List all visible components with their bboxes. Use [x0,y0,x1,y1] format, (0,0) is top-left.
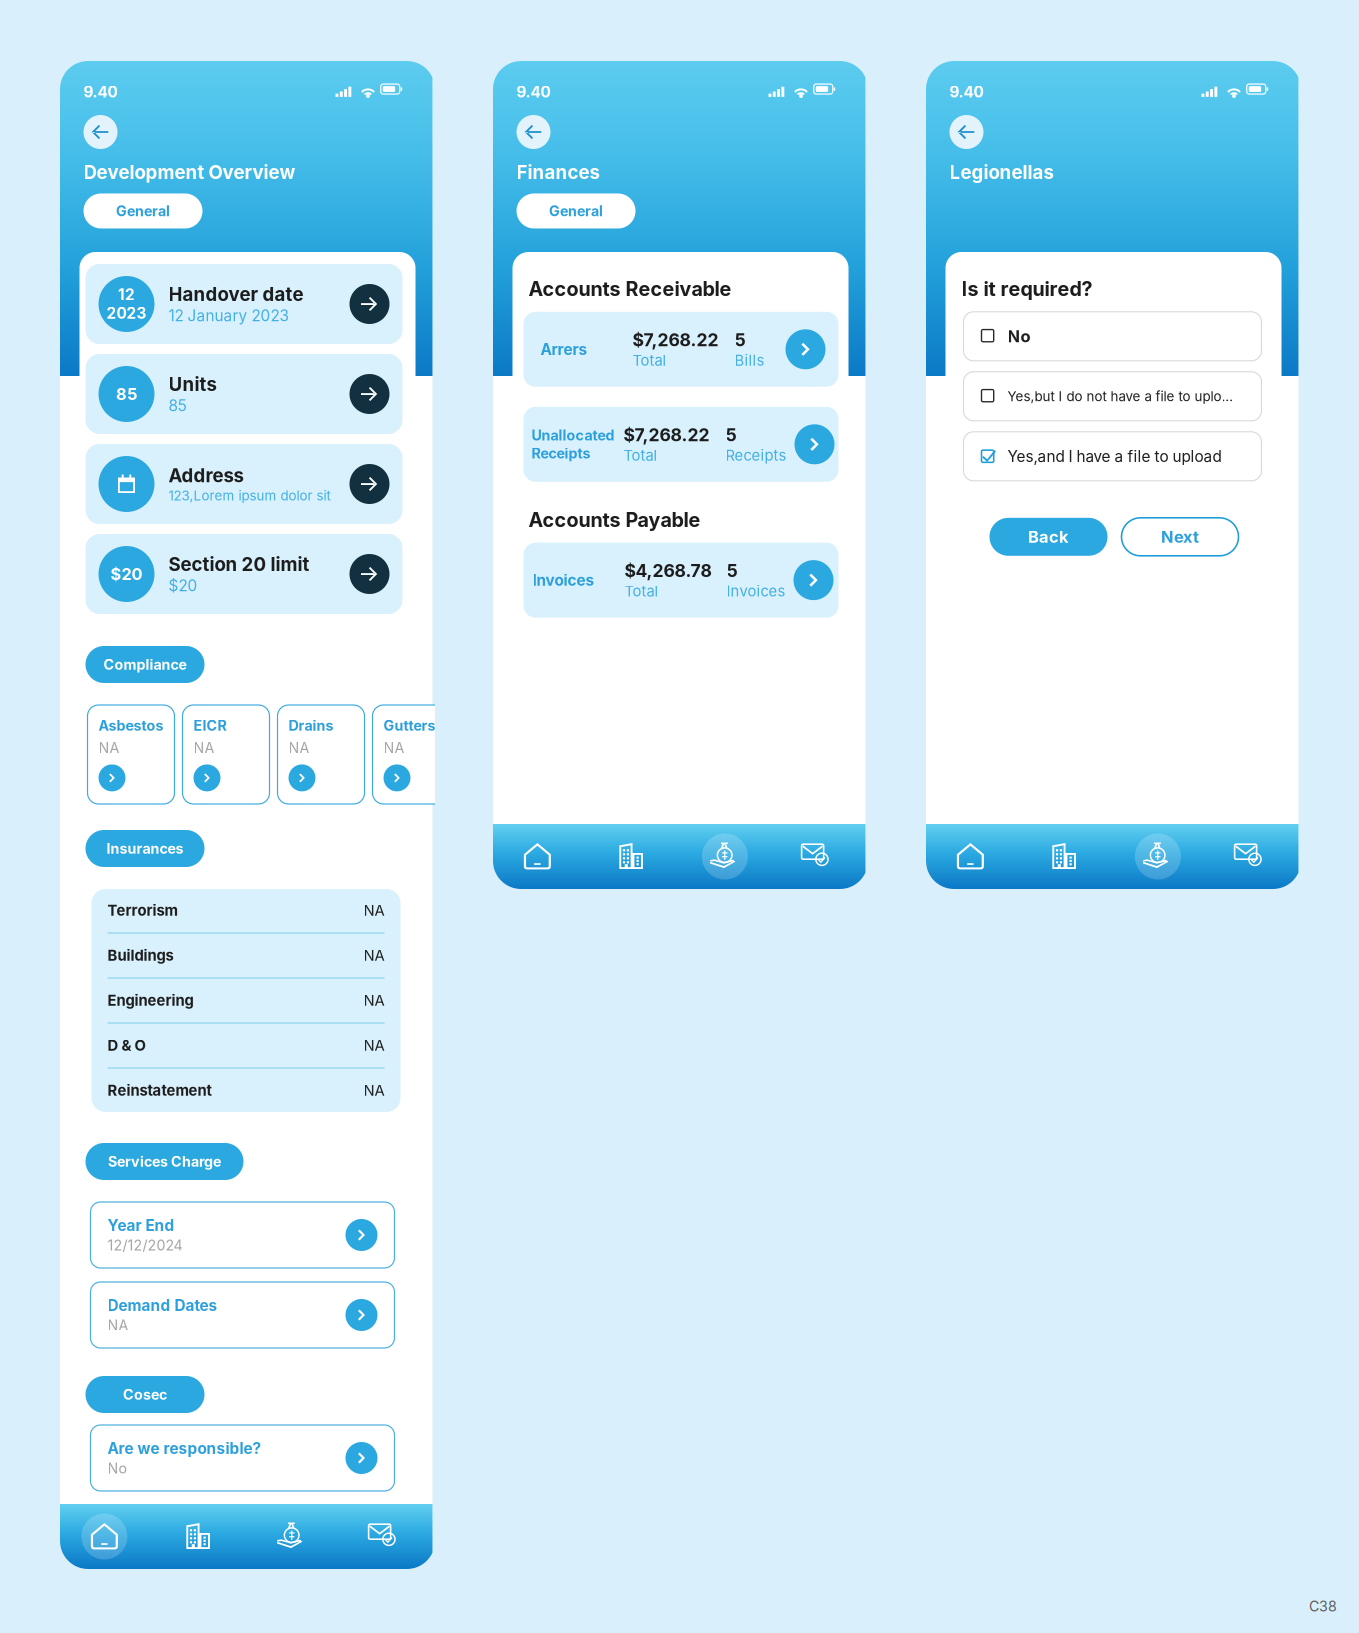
button[interactable]: Year End [90,1202,394,1268]
button[interactable]: Home [490,824,584,889]
staticText: NA [363,992,384,1009]
button[interactable]: Home [57,1504,151,1569]
staticText: EICR [193,717,226,734]
button[interactable]: Unallocated [523,407,838,482]
button[interactable]: Address [85,444,402,524]
staticText: Gutters [383,717,435,734]
staticText: General [116,202,170,220]
staticText: General [549,202,603,220]
staticText: Receipts [725,446,786,464]
staticText: Insurances [106,840,183,857]
staticText: $20 [110,564,142,584]
staticText: NA [288,739,309,756]
button[interactable]: Are we responsible? [90,1425,394,1491]
staticText: Receipts [531,445,590,462]
staticText: 2023 [106,304,146,322]
staticText: Asbestos [98,717,163,734]
staticText: Unallocated [531,427,614,444]
button[interactable]: EICR [182,705,269,804]
staticText: Invoices [726,582,785,600]
staticText: 85 [116,384,137,404]
staticText: Yes,but I do not have a file to upload [1007,388,1233,404]
staticText: 5 [734,329,745,350]
button[interactable]: Yes,and I have a file to upload [963,432,1261,481]
button[interactable]: Invoices [523,543,838,618]
button[interactable]: Cosec [85,1376,204,1413]
staticText: Units [168,373,216,395]
staticText: 5 [725,424,736,445]
staticText: $7,268.22 [623,424,709,445]
staticText: Finances [516,161,599,183]
staticText: No [1007,326,1030,346]
staticText: NA [363,1037,384,1054]
staticText: Engineering [107,992,193,1009]
button[interactable]: Back [516,115,550,149]
staticText: Invoices [532,571,594,589]
button[interactable]: Finances [1111,824,1205,889]
staticText: 9.40 [83,83,117,101]
button[interactable]: General [83,193,202,228]
staticText: $4,268.78 [624,560,711,581]
staticText: NA [363,902,384,919]
staticText: Total [632,351,666,369]
staticText: 5 [726,560,737,581]
button[interactable]: Yes,but I do not have a file to upload [963,372,1261,421]
staticText: Cosec [123,1386,167,1403]
staticText: NA [98,739,119,756]
staticText: Terrorism [107,902,177,919]
button[interactable]: Messages [339,1504,433,1569]
button[interactable]: 12 [85,264,402,344]
staticText: 9.40 [516,83,550,101]
button[interactable]: Back [949,115,983,149]
staticText: Is it required? [961,277,1092,301]
button[interactable]: Insurances [85,830,204,867]
button[interactable]: Buildings [584,824,678,889]
staticText: NA [383,739,404,756]
staticText: Year End [107,1216,174,1235]
staticText: 12 January 2023 [168,306,288,325]
button[interactable]: Buildings [151,1504,245,1569]
staticText: No [107,1460,127,1477]
staticText: NA [363,1082,384,1099]
button[interactable]: Buildings [1017,824,1111,889]
button[interactable]: Messages [1205,824,1299,889]
staticText: Accounts Payable [528,508,700,532]
button[interactable]: Fire [467,705,554,804]
button[interactable]: Asbestos [87,705,174,804]
staticText: 12 [118,285,135,304]
button[interactable]: Back [989,518,1107,556]
staticText: 123,Lorem ipsum dolor sit [168,488,330,504]
button[interactable]: Next [1121,518,1238,556]
button[interactable]: Back [83,115,117,149]
button[interactable]: Drains [277,705,364,804]
staticText: Total [623,446,657,464]
staticText: Accounts Receivable [528,277,731,301]
button[interactable]: $20 [85,534,402,614]
button[interactable]: 85 [85,354,402,434]
staticText: Handover date [168,283,303,305]
staticText: Drains [288,717,333,734]
button[interactable]: Demand Dates [90,1282,394,1348]
staticText: 9.40 [949,83,983,101]
button[interactable]: Services Charge [85,1143,243,1180]
staticText: NA [478,739,499,756]
button[interactable]: Finances [245,1504,339,1569]
button[interactable]: Home [923,824,1017,889]
staticText: NA [363,947,384,964]
staticText: $7,268.22 [632,329,718,350]
button[interactable]: Messages [772,824,866,889]
button[interactable]: Finances [678,824,772,889]
button[interactable]: Arrers [523,312,838,387]
staticText: Reinstatement [107,1082,211,1099]
button[interactable]: Gutters [372,705,459,804]
staticText: Compliance [103,656,186,673]
staticText: Development Overview [83,161,295,183]
staticText: Are we responsible? [107,1439,261,1458]
button[interactable]: General [516,193,635,228]
button[interactable]: Compliance [85,646,204,683]
staticText: Section 20 limit [168,553,309,575]
button[interactable]: No [963,312,1261,361]
staticText: Services Charge [108,1153,221,1170]
staticText: NA [193,739,214,756]
staticText: $20 [168,576,197,595]
